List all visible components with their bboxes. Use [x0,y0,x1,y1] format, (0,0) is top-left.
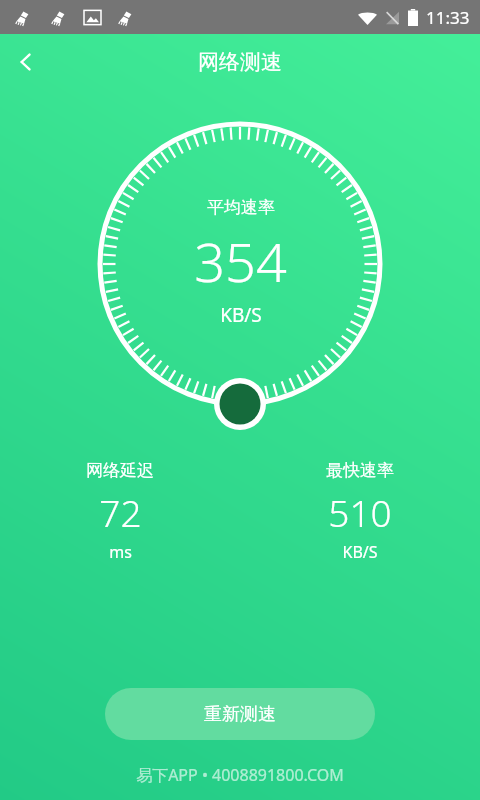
staticText: 354 [194,224,287,298]
staticText: 11:33 [426,6,470,29]
staticText: 易下APP • 4008891800.COM [136,764,344,786]
button[interactable]: 重新测速 [105,688,375,740]
staticText: 最快速率 [326,460,394,481]
staticText: 510 [328,487,392,537]
staticText: KB/S [220,302,262,328]
staticText: 重新测速 [204,703,276,726]
staticText: KB/S [342,541,378,563]
staticText: 网络延迟 [86,460,154,481]
staticText: ms [109,541,132,563]
button[interactable]: Back [0,36,52,88]
staticText: 72 [99,487,142,537]
staticText: 平均速率 [207,197,275,218]
staticText: 网络测速 [198,49,282,75]
